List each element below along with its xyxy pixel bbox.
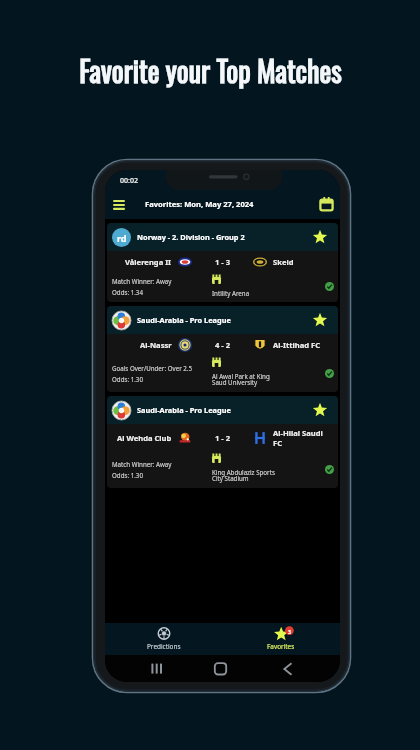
staticText: Match Winner: Away <box>112 277 172 285</box>
staticText: Skeid <box>273 257 294 267</box>
staticText: Favorite your Top Matches <box>79 50 342 91</box>
staticText: Al-Ittihad FC <box>273 340 321 350</box>
staticText: King Abdulaziz Sports City Stadium <box>212 468 275 483</box>
staticText: 1 - 3 <box>215 257 231 267</box>
staticText: Vålerenga II <box>125 257 172 267</box>
staticText: 00:02 <box>120 176 138 186</box>
staticText: 4 - 2 <box>215 340 231 350</box>
staticText: Al-Hilal Saudi FC <box>273 428 332 448</box>
staticText: Saudi-Arabia - Pro League <box>137 405 231 415</box>
staticText: 1 - 2 <box>215 433 231 443</box>
button[interactable]: Predictions <box>105 623 222 655</box>
staticText: Odds: 1.34 <box>112 288 143 296</box>
button[interactable]: Saudi-Arabia - Pro League <box>107 306 338 392</box>
staticText: Odds: 1.30 <box>112 375 143 383</box>
staticText: Predictions <box>147 642 181 651</box>
staticText: Al Wehda Club <box>117 433 172 443</box>
staticText: Favorites: Mon, May 27, 2024 <box>145 199 254 209</box>
button[interactable]: Saudi-Arabia - Pro League <box>107 396 338 488</box>
button[interactable]: Favorite <box>313 230 327 244</box>
staticText: 3 <box>288 628 291 635</box>
staticText: Odds: 1.30 <box>112 471 143 479</box>
staticText: Al-Nassr <box>140 340 172 350</box>
button[interactable]: Menu <box>109 194 129 214</box>
staticText: Match Winner: Away <box>112 460 172 468</box>
staticText: Goals Over/Under: Over 2.5 <box>112 364 193 372</box>
button[interactable]: 3 <box>222 623 340 655</box>
staticText: Intility Arena <box>212 289 250 297</box>
staticText: Saudi-Arabia - Pro League <box>137 315 231 325</box>
button[interactable]: Calendar <box>316 194 336 214</box>
staticText: Favorites <box>267 642 295 651</box>
button[interactable]: Favorite <box>313 313 327 327</box>
button[interactable]: rd <box>107 223 338 302</box>
button[interactable]: Favorite <box>313 403 327 417</box>
staticText: rd <box>117 232 127 244</box>
staticText: Al Awal Park at King Saud University <box>212 372 270 387</box>
staticText: Norway - 2. Division - Group 2 <box>137 232 245 242</box>
